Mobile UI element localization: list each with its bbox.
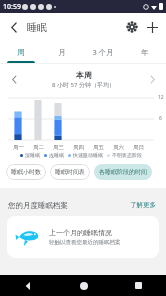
staticText: 3 个月: [92, 47, 114, 57]
staticText: 本周: [76, 70, 92, 80]
staticText: 睡眠时间表: [55, 168, 85, 176]
button[interactable]: Previous week: [6, 71, 22, 87]
staticText: 各睡眠阶段的时间: [99, 168, 147, 176]
staticText: 周六: [113, 144, 124, 151]
button[interactable]: 3 个月: [82, 41, 124, 63]
staticText: 6: [159, 115, 162, 122]
button[interactable]: Back: [5, 18, 23, 36]
staticText: 12: [158, 94, 164, 101]
staticText: 周日: [133, 144, 144, 151]
staticText: 周: [17, 48, 25, 57]
button[interactable]: 上一个月的睡眠情况: [7, 216, 159, 258]
staticText: 了解更多: [130, 201, 156, 209]
button[interactable]: 睡眠时间表: [50, 164, 90, 180]
button[interactable]: Home: [56, 275, 111, 296]
button[interactable]: 了解更多: [128, 199, 158, 211]
staticText: 轻触以查看您最近的睡眠档案: [49, 239, 121, 246]
staticText: 周一: [13, 144, 24, 151]
staticText: 浅睡眠: [49, 152, 64, 158]
staticText: 8 小时 57 分钟（平均）: [52, 81, 115, 89]
staticText: 您的月度睡眠档案: [8, 201, 68, 210]
staticText: 睡眠: [27, 21, 47, 34]
button[interactable]: 睡眠小时数: [6, 164, 46, 180]
staticText: 周五: [93, 144, 104, 151]
staticText: 不明状态阶段: [112, 152, 142, 158]
button[interactable]: Settings: [122, 17, 142, 37]
staticText: 上一个月的睡眠情况: [49, 228, 112, 237]
button[interactable]: 月: [41, 41, 82, 63]
button[interactable]: 周: [0, 41, 41, 63]
staticText: 深睡眠: [25, 152, 40, 158]
staticText: 周三: [53, 144, 64, 151]
staticText: 睡眠小时数: [11, 168, 41, 176]
button[interactable]: Back: [0, 275, 56, 296]
staticText: 周四: [73, 144, 84, 151]
button[interactable]: Next week: [144, 71, 160, 87]
staticText: 周二: [33, 144, 44, 151]
button[interactable]: Recents: [111, 275, 166, 296]
staticText: 快速眼动睡眠: [73, 152, 103, 158]
staticText: 年: [141, 48, 149, 57]
staticText: 月: [58, 48, 66, 57]
button[interactable]: Add: [142, 17, 162, 37]
staticText: 10:59: [3, 2, 21, 12]
button[interactable]: 各睡眠阶段的时间: [94, 164, 152, 180]
button[interactable]: 年: [124, 41, 166, 63]
